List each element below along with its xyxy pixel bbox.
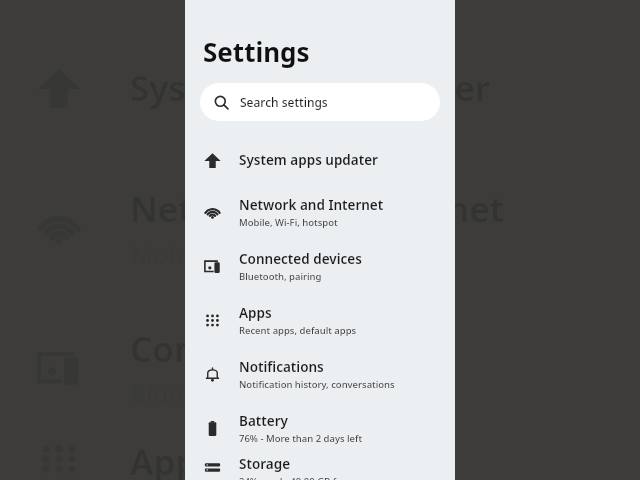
button[interactable]: Search settings [200,83,440,121]
staticText: Search settings [240,94,328,110]
staticText: Apps [130,438,215,480]
staticText: Notification history, conversations [239,378,395,391]
staticText: 24% used - 49.00 GB free [239,475,351,480]
staticText: Settings [203,34,310,69]
button[interactable]: Network and Internet [185,185,455,239]
button[interactable]: Notifications [185,347,455,401]
staticText: Mobile, Wi-Fi, hotspot [239,216,338,229]
button[interactable]: Storage [185,455,455,480]
staticText: Connected devices [239,250,362,268]
staticText: Apps [239,304,272,322]
staticText: Network and Internet [239,196,384,214]
button[interactable]: Apps [185,293,455,347]
button[interactable]: System apps updater [185,135,455,185]
staticText: Network and Internet [130,185,504,233]
staticText: System apps updater [239,151,378,169]
staticText: System apps updater [130,64,491,112]
button[interactable]: Connected devices [185,239,455,293]
staticText: Bluetooth, pairing [239,270,322,283]
staticText: Bluetooth, pairing [130,377,347,411]
staticText: Storage [239,455,291,473]
staticText: Mobile, Wi-Fi, hotspot [130,237,390,271]
staticText: Recent apps, default apps [239,324,357,337]
staticText: 76% - More than 2 days left [239,432,363,445]
button[interactable]: Battery [185,401,455,455]
staticText: Battery [239,412,288,430]
staticText: Connected devices [130,325,449,373]
staticText: Notifications [239,358,324,376]
